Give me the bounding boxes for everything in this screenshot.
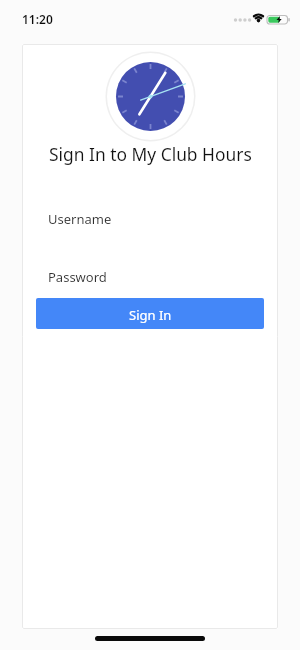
button[interactable]: Sign In — [36, 298, 264, 329]
staticText: Sign In — [129, 306, 172, 324]
staticText: 11:20 — [22, 11, 53, 27]
staticText: Password — [48, 268, 107, 286]
staticText: Sign In to My Club Hours — [49, 142, 252, 166]
staticText: Username — [48, 210, 112, 228]
button[interactable]: Password — [36, 262, 264, 292]
button[interactable]: Username — [36, 204, 264, 234]
